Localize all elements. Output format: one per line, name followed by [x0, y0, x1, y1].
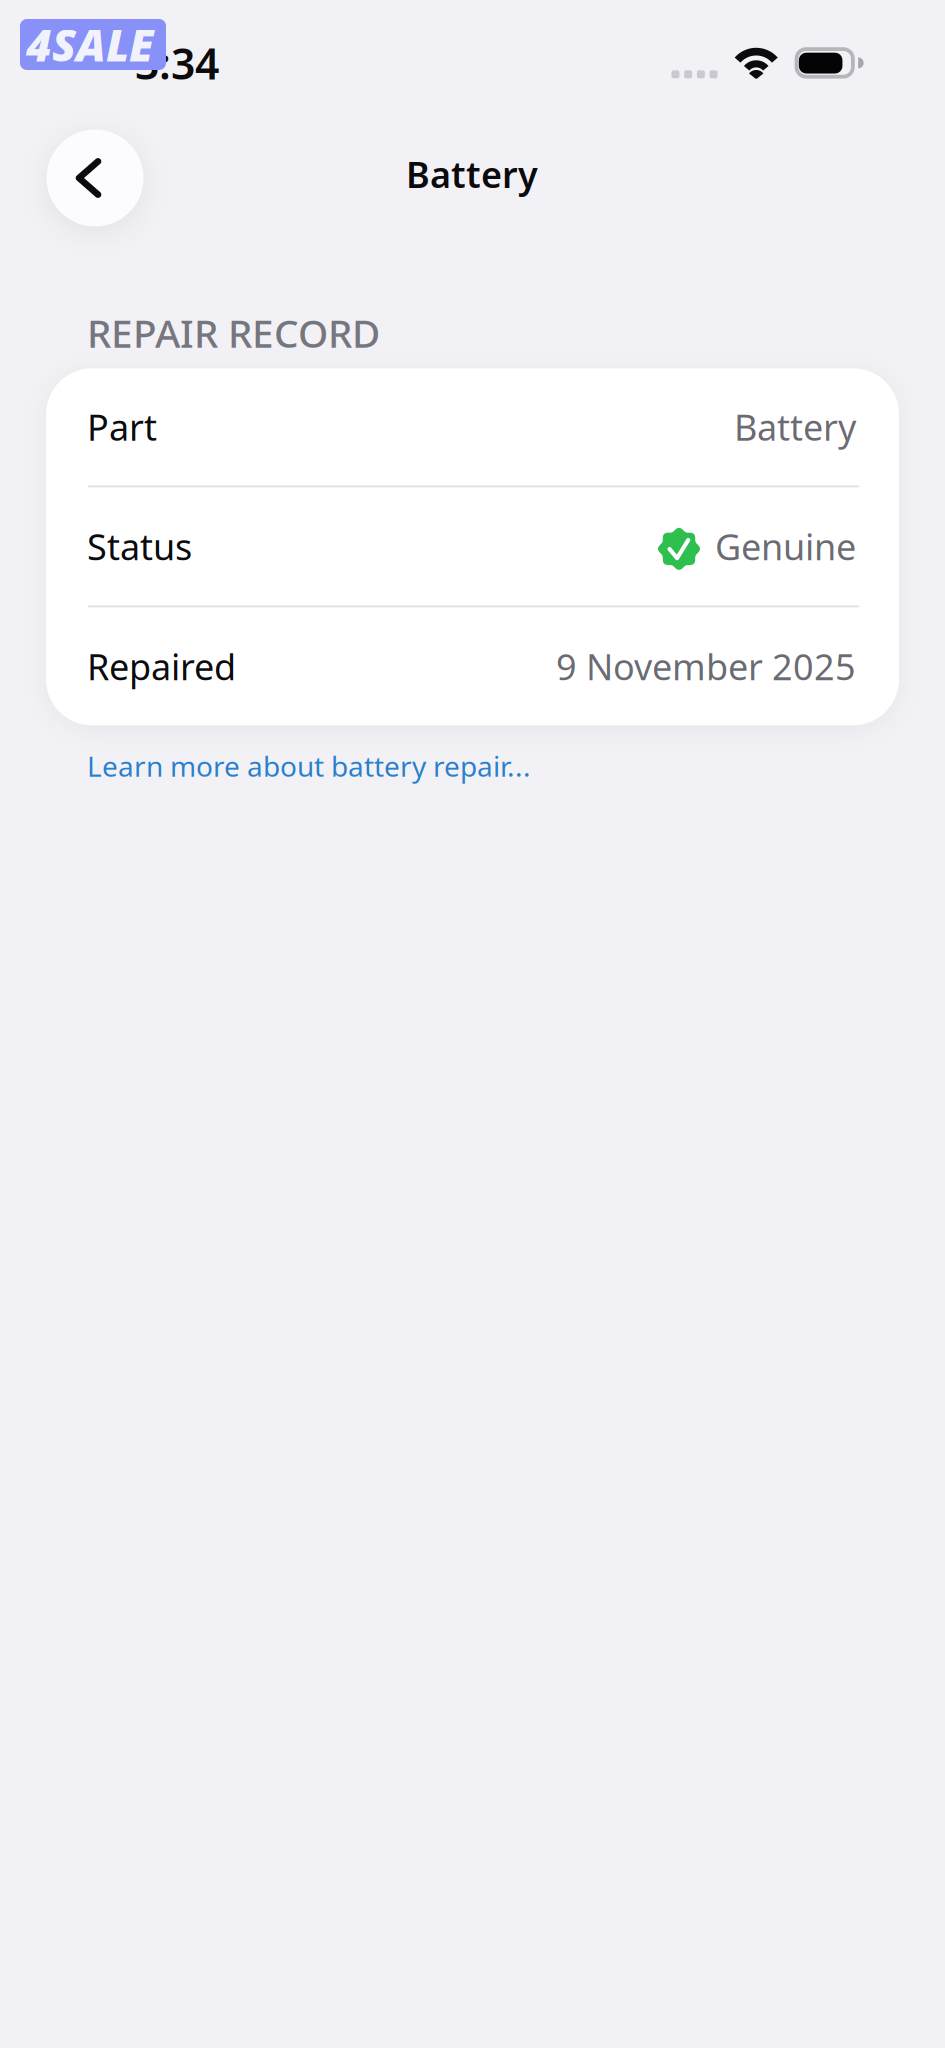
- staticText: Repaired: [87, 642, 236, 690]
- staticText: Genuine: [715, 522, 856, 570]
- staticText: 9 November 2025: [556, 642, 856, 690]
- staticText: Learn more about battery repair...: [87, 747, 531, 784]
- button[interactable]: Learn more about battery repair...: [46, 725, 531, 794]
- staticText: Battery: [734, 403, 856, 451]
- staticText: REPAIR RECORD: [87, 307, 380, 358]
- staticText: 3:34: [135, 35, 219, 91]
- staticText: Status: [87, 522, 192, 570]
- staticText: Battery: [406, 150, 538, 198]
- button[interactable]: Back: [46, 129, 143, 226]
- staticText: 4SALE: [26, 15, 154, 74]
- staticText: Part: [87, 403, 157, 451]
